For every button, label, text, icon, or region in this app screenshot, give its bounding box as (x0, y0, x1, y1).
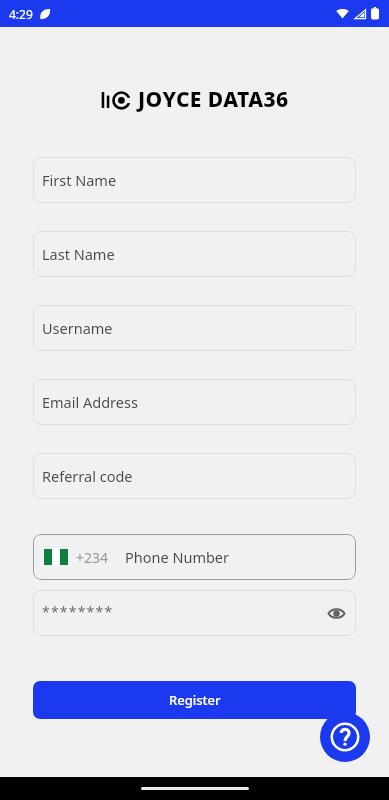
staticText: ******** (42, 602, 114, 621)
staticText: 4:29 (9, 6, 33, 22)
button[interactable]: ******** (33, 590, 356, 636)
button[interactable]: Help (320, 712, 370, 762)
staticText: First Name (42, 170, 117, 190)
staticText: JOYCE DATA36 (138, 85, 289, 114)
staticText: +234 (76, 548, 109, 567)
staticText: Phone Number (125, 547, 230, 567)
staticText: Last Name (42, 244, 115, 264)
button[interactable]: Register (33, 681, 356, 719)
staticText: Email Address (42, 392, 138, 412)
button[interactable]: First Name (33, 157, 356, 203)
button[interactable]: Username (33, 305, 356, 351)
button[interactable]: Last Name (33, 231, 356, 277)
button[interactable]: Show password (320, 597, 352, 629)
button[interactable]: Referral code (33, 453, 356, 499)
staticText: Username (42, 318, 113, 338)
staticText: Referral code (42, 466, 133, 486)
staticText: Register (169, 691, 221, 709)
button[interactable]: Email Address (33, 379, 356, 425)
button[interactable]: +234 (33, 534, 356, 580)
